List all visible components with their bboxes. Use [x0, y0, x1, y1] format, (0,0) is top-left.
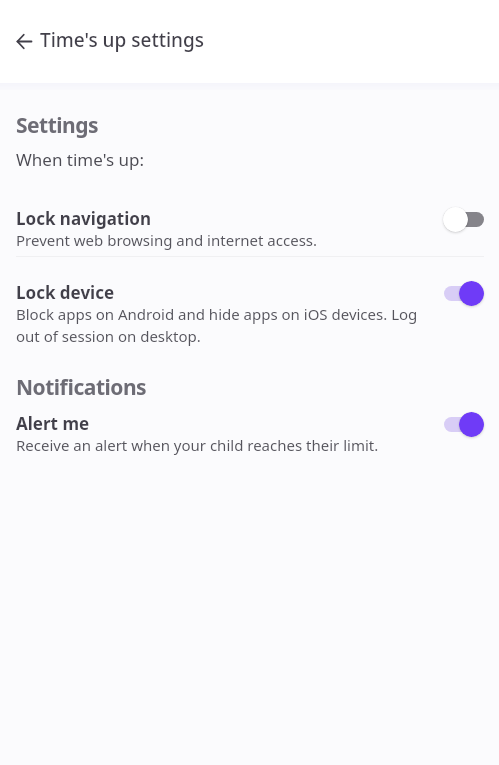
staticText: Time's up settings [40, 27, 205, 53]
button[interactable]: Alert me [0, 412, 499, 455]
button[interactable]: Lock device [0, 281, 499, 347]
button[interactable]: Lock navigation [0, 207, 499, 250]
staticText: Prevent web browsing and internet access… [16, 230, 318, 250]
staticText: Receive an alert when your child reaches… [16, 435, 379, 455]
staticText: When time's up: [16, 148, 145, 171]
button[interactable] [17, 34, 32, 49]
staticText: Lock navigation [16, 207, 151, 230]
staticText: Notifications [16, 373, 147, 402]
staticText: Lock device [16, 281, 115, 304]
staticText: Settings [16, 111, 99, 140]
staticText: Alert me [16, 412, 90, 435]
staticText: Block apps on Android and hide apps on i… [16, 304, 418, 347]
